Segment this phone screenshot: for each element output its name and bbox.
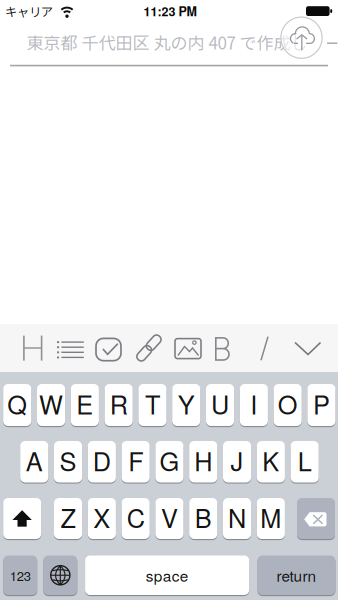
button[interactable]: C — [122, 498, 150, 539]
staticText: C — [127, 499, 145, 535]
button[interactable]: V — [155, 498, 183, 539]
button[interactable]: M — [257, 498, 285, 539]
button[interactable]: B — [189, 498, 217, 539]
button[interactable]: O — [274, 384, 302, 426]
button[interactable]: N — [223, 498, 251, 539]
button[interactable]: Next keyboard — [43, 555, 77, 595]
staticText: E — [76, 385, 93, 422]
staticText: P — [313, 385, 330, 422]
button[interactable]: I — [240, 384, 268, 426]
button[interactable]: Shift — [3, 498, 41, 539]
staticText: X — [93, 499, 110, 535]
staticText: I — [250, 385, 257, 422]
button[interactable]: P — [307, 384, 335, 426]
staticText: 東京都 千代田区 丸の内 407 で作成し — [27, 30, 308, 54]
button[interactable]: D — [88, 441, 116, 482]
staticText: G — [159, 442, 179, 478]
button[interactable]: S — [54, 441, 82, 482]
staticText: Q — [7, 385, 27, 422]
button[interactable]: space — [85, 555, 249, 595]
button[interactable]: J — [223, 441, 251, 482]
staticText: S — [59, 442, 76, 478]
staticText: T — [145, 385, 160, 422]
staticText: B — [195, 499, 212, 535]
staticText: キャリア — [5, 2, 53, 20]
staticText: M — [260, 499, 281, 535]
button[interactable]: A — [20, 441, 48, 482]
button[interactable]: L — [291, 441, 319, 482]
button[interactable]: F — [122, 441, 150, 482]
staticText: space — [146, 564, 189, 586]
button[interactable]: Bold — [208, 324, 242, 372]
button[interactable]: E — [71, 384, 99, 426]
button[interactable]: Checklist — [91, 324, 125, 372]
staticText: return — [276, 564, 316, 586]
button[interactable]: H — [189, 441, 217, 482]
button[interactable]: Z — [54, 498, 82, 539]
button[interactable]: Dismiss keyboard — [291, 324, 325, 372]
staticText: Y — [178, 385, 195, 422]
staticText: D — [93, 442, 111, 478]
staticText: J — [230, 442, 243, 478]
staticText: A — [26, 442, 43, 478]
button[interactable]: Bullet list — [53, 324, 87, 372]
staticText: F — [128, 442, 143, 478]
staticText: N — [228, 499, 246, 535]
button[interactable]: Heading — [16, 324, 50, 372]
staticText: 11:23 PM — [143, 2, 196, 20]
staticText: H — [194, 442, 212, 478]
button[interactable]: return — [257, 555, 335, 595]
button[interactable]: Link — [132, 324, 166, 372]
button[interactable]: U — [206, 384, 234, 426]
button[interactable]: Sync — [280, 17, 322, 59]
button[interactable]: X — [88, 498, 116, 539]
button[interactable]: W — [37, 384, 65, 426]
staticText: L — [298, 442, 312, 478]
staticText: V — [161, 499, 178, 535]
staticText: W — [39, 385, 63, 422]
staticText: 123 — [10, 566, 31, 585]
button[interactable]: G — [155, 441, 183, 482]
staticText: U — [211, 385, 229, 422]
button[interactable]: Y — [172, 384, 200, 426]
button[interactable]: Q — [3, 384, 31, 426]
button[interactable]: T — [138, 384, 166, 426]
staticText: Z — [60, 499, 75, 535]
staticText: K — [262, 442, 279, 478]
staticText: R — [110, 385, 128, 422]
staticText: O — [278, 385, 298, 422]
button[interactable]: Italic — [247, 324, 281, 372]
button[interactable]: R — [105, 384, 133, 426]
button[interactable]: 123 — [3, 555, 37, 595]
button[interactable]: K — [257, 441, 285, 482]
button[interactable]: Delete — [297, 498, 335, 539]
button[interactable]: Insert photo — [171, 324, 205, 372]
